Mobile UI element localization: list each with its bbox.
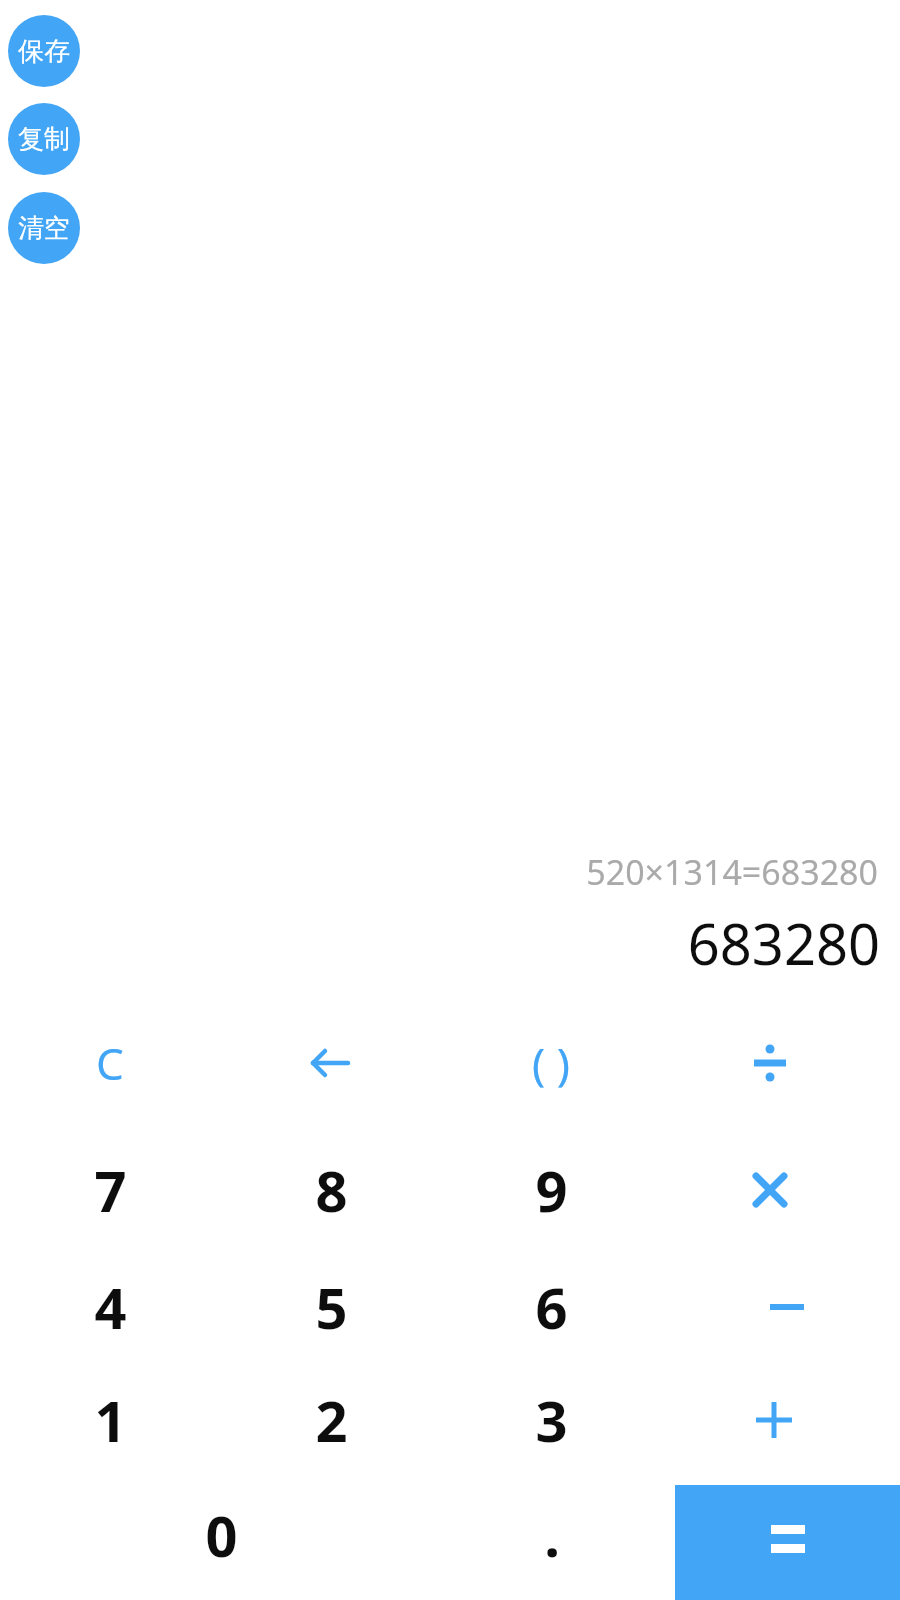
button[interactable]: 5 [231,1252,431,1362]
button[interactable]: 7 [10,1135,210,1245]
staticText: 5 [315,1269,348,1345]
button[interactable]: . [452,1480,652,1590]
button[interactable]: Backspace [231,1008,431,1118]
button[interactable]: 8 [231,1135,431,1245]
staticText: 复制 [18,123,70,156]
staticText: 4 [94,1269,127,1345]
staticText: C [96,1033,124,1093]
button[interactable]: 1 [10,1365,210,1475]
button[interactable]: Equals [675,1485,900,1600]
staticText: 2 [315,1382,348,1458]
staticText: 0 [205,1497,238,1573]
button[interactable]: 清空 [8,192,80,264]
staticText: 6 [535,1269,568,1345]
staticText: 清空 [18,212,70,245]
staticText: 683280 [378,905,880,977]
button[interactable]: Divide [670,1008,870,1118]
button[interactable]: 3 [451,1365,651,1475]
button[interactable]: C [10,1008,210,1118]
button[interactable]: 2 [231,1365,431,1475]
staticText: 7 [94,1152,127,1228]
staticText: 1 [94,1382,127,1458]
button[interactable]: 保存 [8,15,80,87]
button[interactable]: 0 [121,1480,321,1590]
button[interactable]: 9 [451,1135,651,1245]
staticText: 520×1314=683280 [378,849,878,895]
button[interactable]: 复制 [8,103,80,175]
button[interactable]: ( ) [451,1008,651,1118]
staticText: 9 [535,1152,568,1228]
staticText: 8 [315,1152,348,1228]
staticText: . [544,1497,560,1573]
staticText: ( ) [532,1033,570,1093]
button[interactable]: Multiply [670,1135,870,1245]
staticText: 3 [535,1382,568,1458]
button[interactable]: Plus [674,1365,874,1475]
button[interactable]: Minus [687,1252,887,1362]
button[interactable]: 6 [451,1252,651,1362]
staticText: 保存 [18,35,70,68]
button[interactable]: 4 [10,1252,210,1362]
